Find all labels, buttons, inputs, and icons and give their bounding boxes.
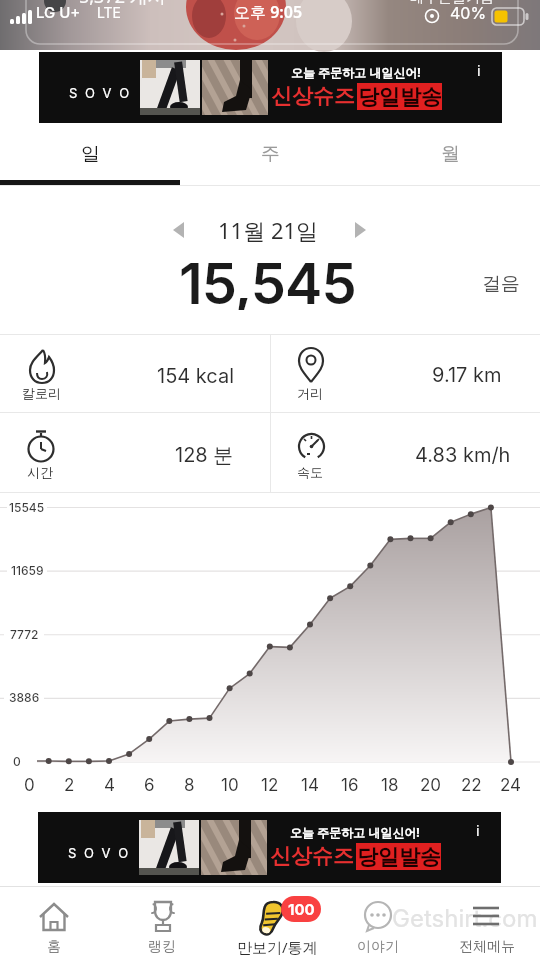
staticText: 주 — [261, 142, 280, 166]
button[interactable]: 월 — [360, 123, 540, 185]
staticText: 3886 — [9, 690, 40, 705]
staticText: 11659 — [11, 563, 44, 578]
staticText: 7772 — [10, 627, 39, 642]
button[interactable]: 만보기/통계 — [216, 887, 324, 960]
staticText: 0 — [13, 754, 21, 769]
staticText: 15,545 — [179, 250, 356, 310]
staticText: 20 — [420, 775, 442, 796]
staticText: 전체메뉴 — [459, 938, 515, 956]
staticText: 당일발송 — [357, 844, 441, 870]
staticText: 14 — [301, 775, 319, 796]
staticText: S O V O — [69, 85, 132, 101]
staticText: 16 — [341, 775, 359, 796]
staticText: 배우는즐거움 — [410, 0, 494, 7]
staticText: i — [477, 61, 481, 80]
staticText: 40% — [450, 3, 487, 22]
staticText: 154 kcal — [157, 364, 235, 388]
button[interactable]: 랭킹 — [108, 887, 216, 960]
staticText: LG U+ — [36, 3, 81, 21]
staticText: 당일발송 — [358, 84, 442, 110]
staticText: 칼로리 — [22, 385, 61, 401]
button[interactable]: 홈 — [0, 887, 108, 960]
button[interactable]: 일 — [0, 123, 180, 185]
staticText: 0 — [24, 775, 35, 796]
button[interactable] — [353, 222, 367, 238]
staticText: 오후 9:05 — [234, 1, 303, 23]
staticText: 6 — [144, 775, 155, 796]
staticText: 만보기/통계 — [237, 937, 318, 957]
staticText: 이야기 — [357, 938, 399, 956]
staticText: 24 — [500, 775, 522, 796]
button[interactable] — [172, 222, 186, 238]
staticText: 10 — [221, 775, 239, 796]
staticText: 2 — [64, 775, 75, 796]
button[interactable]: 이야기 — [324, 887, 432, 960]
staticText: 100 — [288, 900, 315, 918]
staticText: LTE — [97, 4, 122, 21]
button[interactable]: 전체메뉴 — [432, 887, 540, 960]
staticText: 신상슈즈 — [271, 83, 355, 109]
staticText: 월 — [441, 142, 460, 166]
staticText: 5,372 개시 — [79, 0, 166, 9]
staticText: 12 — [261, 775, 279, 796]
staticText: 시간 — [27, 464, 53, 480]
staticText: 22 — [461, 775, 482, 796]
staticText: 4 — [104, 775, 115, 796]
button[interactable]: S O V O — [39, 52, 502, 123]
staticText: 15545 — [9, 500, 45, 515]
staticText: 랭킹 — [148, 938, 176, 956]
staticText: 9.17 km — [432, 363, 502, 387]
staticText: S O V O — [68, 845, 131, 861]
staticText: 오늘 주문하고 내일신어! — [290, 824, 420, 840]
staticText: 일 — [81, 142, 100, 166]
staticText: i — [476, 821, 480, 840]
button[interactable]: S O V O — [38, 812, 501, 883]
staticText: Getshirt.com — [392, 904, 538, 933]
staticText: 거리 — [297, 385, 323, 401]
staticText: 18 — [381, 775, 399, 796]
staticText: 걸음 — [482, 272, 520, 296]
staticText: 홈 — [47, 938, 61, 956]
staticText: 신상슈즈 — [270, 843, 354, 869]
staticText: 속도 — [297, 464, 323, 480]
button[interactable]: 주 — [180, 123, 360, 185]
staticText: 8 — [184, 775, 195, 796]
staticText: 11월 21일 — [218, 215, 319, 245]
staticText: 4.83 km/h — [415, 443, 511, 467]
staticText: 128 분 — [175, 443, 234, 468]
staticText: 오늘 주문하고 내일신어! — [291, 64, 421, 80]
